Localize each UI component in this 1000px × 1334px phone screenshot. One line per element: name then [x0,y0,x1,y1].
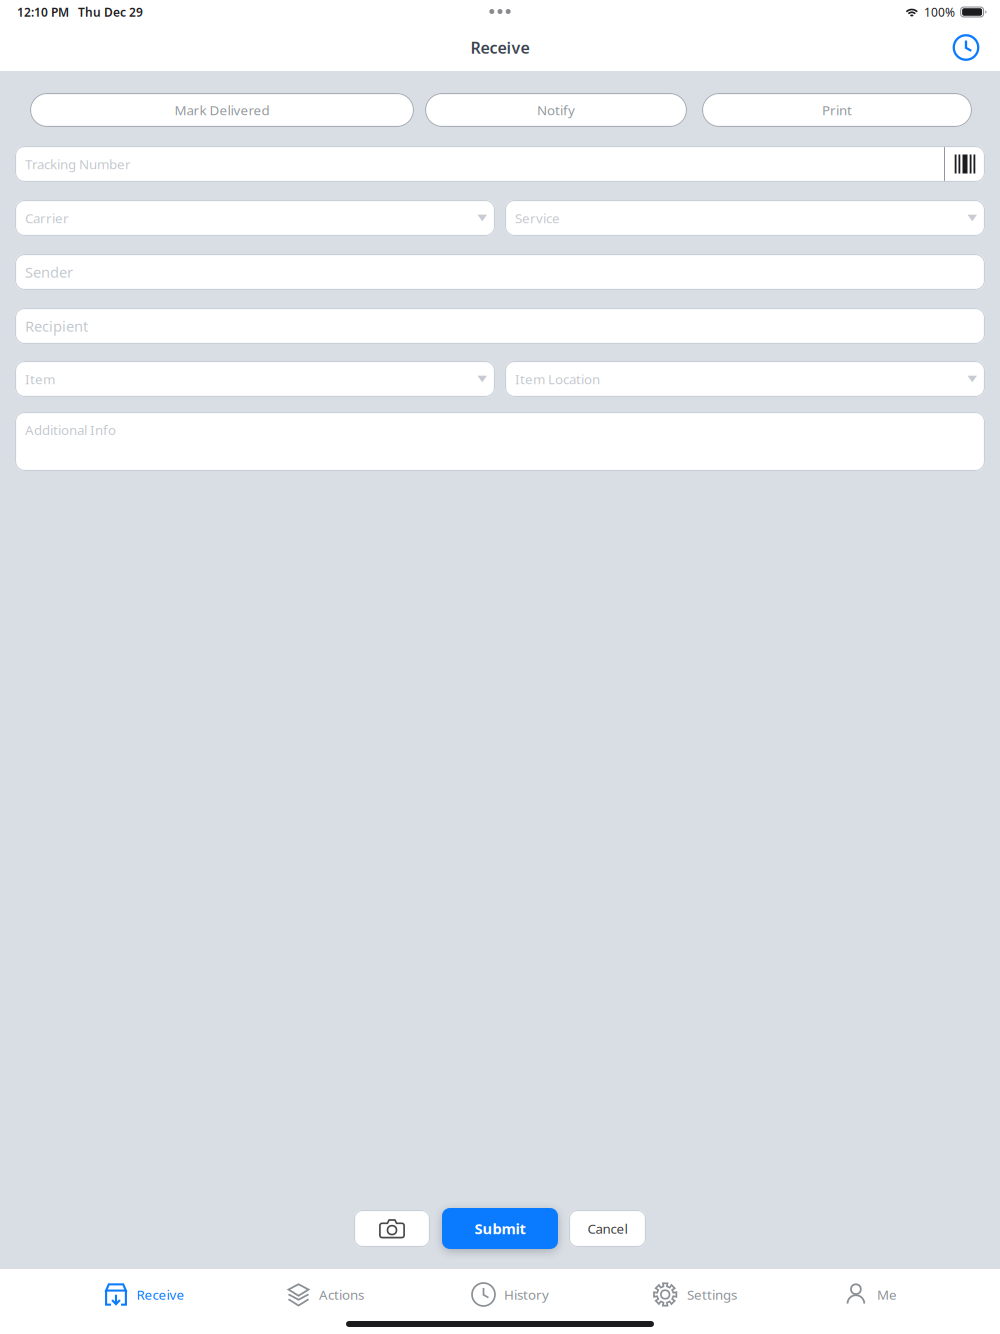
staticText: History [504,1286,549,1303]
staticText: Submit [474,1219,525,1238]
staticText: Receive [136,1286,184,1303]
staticText: Service [515,209,560,227]
button[interactable]: Notify [425,93,687,127]
button[interactable]: Service [505,200,985,236]
staticText: Me [877,1286,897,1303]
button[interactable]: Item Location [505,361,985,397]
button[interactable]: History [472,1268,549,1321]
button[interactable]: Take a photo [354,1210,430,1247]
button[interactable]: Receive [105,1268,184,1321]
button[interactable]: Me [846,1268,897,1321]
button[interactable]: Additional Info [15,412,985,471]
button[interactable]: Settings [653,1268,737,1321]
staticText: Sender [25,262,73,282]
staticText: Carrier [25,209,69,227]
button[interactable]: Sender [15,254,985,290]
staticText: 100% [924,4,955,20]
staticText: 12:10 PM Thu Dec 29 [17,4,143,20]
button[interactable]: Actions [287,1268,364,1321]
button[interactable]: Carrier [15,200,495,236]
button[interactable]: Cancel [569,1210,646,1247]
staticText: Additional Info [25,421,116,439]
button[interactable]: Mark Delivered [30,93,414,127]
staticText: Receive [470,37,529,58]
staticText: Item Location [515,370,600,388]
button[interactable]: Recipient [15,308,985,344]
button[interactable]: Submit [442,1208,558,1249]
staticText: Mark Delivered [174,101,269,119]
staticText: Actions [319,1286,364,1303]
button[interactable]: Recent history [943,24,989,70]
button[interactable]: Print [702,93,972,127]
staticText: Notify [537,101,575,119]
staticText: Print [822,101,852,119]
staticText: Cancel [587,1220,627,1237]
staticText: Settings [687,1286,737,1303]
staticText: Item [25,370,55,388]
staticText: Recipient [25,316,88,336]
button[interactable]: Tracking Number [15,146,944,182]
staticText: Tracking Number [25,155,131,173]
button[interactable]: Scan barcode [945,146,985,182]
button[interactable]: Item [15,361,495,397]
